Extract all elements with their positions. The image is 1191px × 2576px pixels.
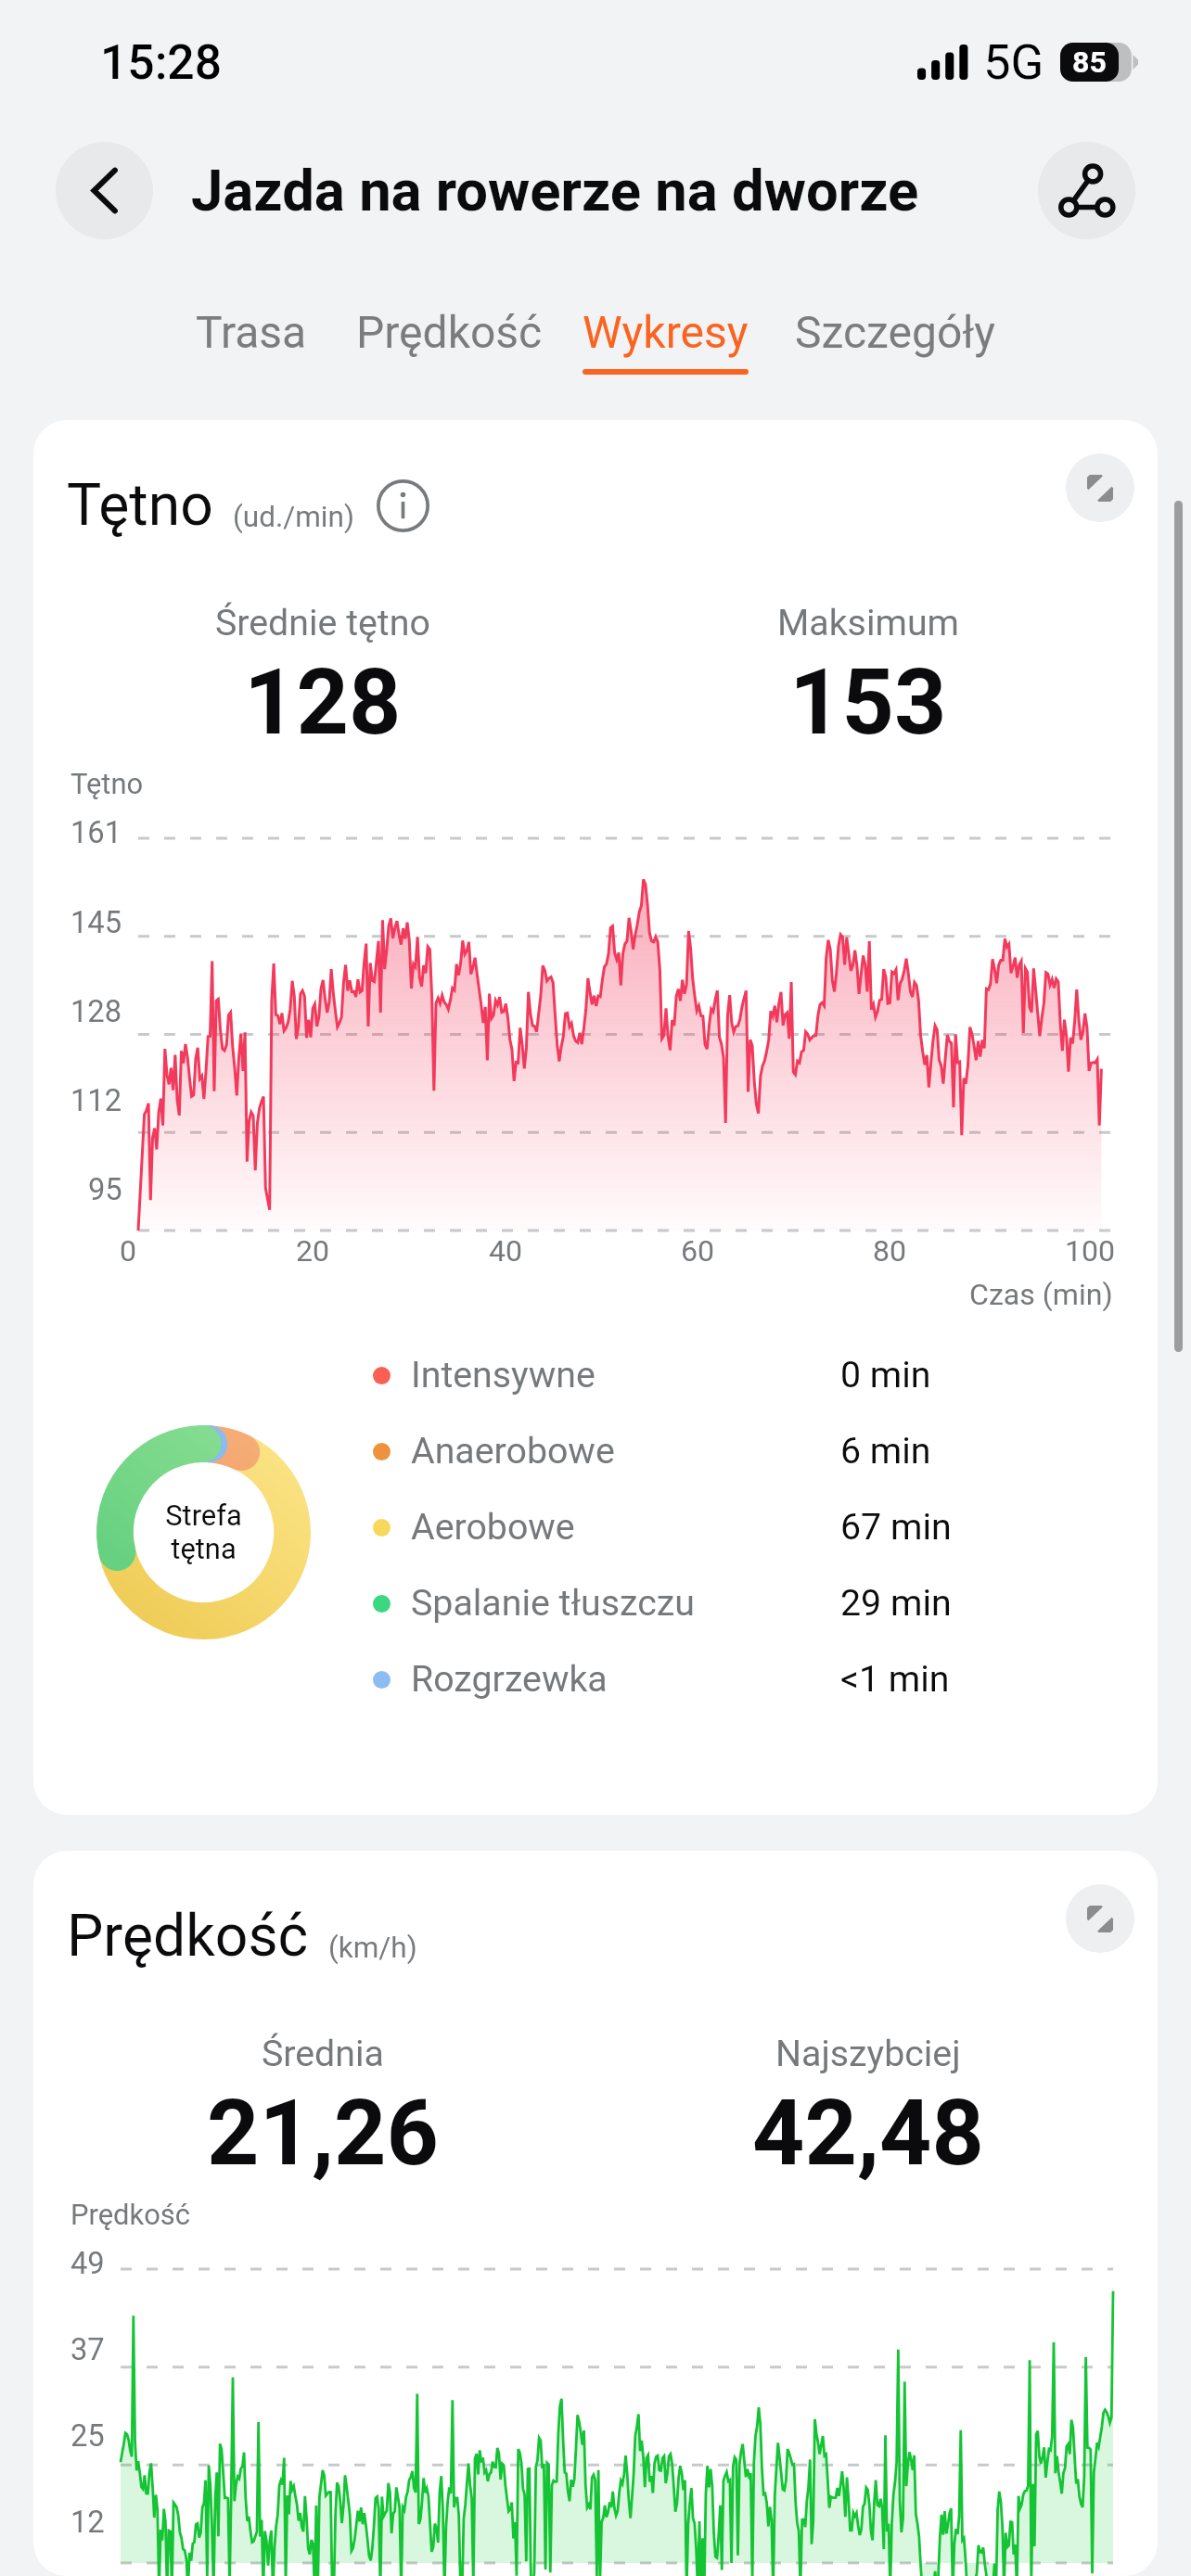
staticText: 40: [489, 1233, 523, 1269]
button[interactable]: Trasa: [196, 306, 307, 375]
staticText: Prędkość: [67, 1902, 309, 1970]
staticText: 112: [70, 1083, 122, 1118]
staticText: Jazda na rowerze na dworze: [191, 158, 919, 224]
staticText: 49: [70, 2246, 105, 2281]
staticText: Tętno: [70, 767, 144, 800]
staticText: 67 min: [840, 1506, 952, 1549]
staticText: 29 min: [840, 1582, 952, 1625]
staticText: 128: [244, 649, 402, 756]
staticText: 0 min: [840, 1354, 931, 1396]
staticText: 20: [296, 1233, 330, 1269]
button[interactable]: Powiększ wykres: [1066, 453, 1134, 522]
button[interactable]: Wstecz: [56, 142, 153, 239]
staticText: 21,26: [207, 2080, 439, 2187]
staticText: 153: [789, 649, 947, 756]
staticText: Najszybciej: [775, 2033, 961, 2075]
staticText: 5G: [983, 33, 1044, 91]
staticText: <1 min: [840, 1658, 950, 1701]
staticText: Anaerobowe: [411, 1430, 615, 1473]
staticText: 37: [70, 2332, 105, 2367]
staticText: Prędkość: [70, 2198, 190, 2231]
button[interactable]: Szczegóły: [795, 306, 995, 375]
staticText: Średnia: [262, 2033, 384, 2075]
staticText: 0: [120, 1233, 137, 1269]
staticText: Średnie tętno: [215, 602, 430, 644]
staticText: 12: [70, 2505, 105, 2540]
staticText: Szczegóły: [795, 306, 995, 358]
staticText: Tętno: [67, 471, 213, 539]
staticText: Intensywne: [411, 1354, 595, 1396]
staticText: Spalanie tłuszczu: [411, 1582, 695, 1625]
staticText: 95: [88, 1172, 122, 1207]
staticText: Wykresy: [583, 306, 749, 358]
staticText: (km/h): [328, 1931, 417, 1965]
staticText: 15:28: [100, 34, 222, 90]
staticText: 128: [70, 994, 122, 1029]
staticText: 25: [70, 2418, 105, 2454]
staticText: 145: [70, 905, 122, 940]
staticText: (ud./min): [233, 500, 354, 534]
button[interactable]: Prędkość: [356, 306, 543, 375]
staticText: Trasa: [196, 306, 307, 358]
button[interactable]: Wykresy: [583, 306, 749, 375]
staticText: 80: [873, 1233, 907, 1269]
staticText: Prędkość: [356, 306, 543, 358]
staticText: 42,48: [752, 2080, 984, 2187]
staticText: Maksimum: [777, 602, 960, 644]
staticText: 6 min: [840, 1430, 931, 1473]
staticText: Strefa tętna: [165, 1498, 242, 1565]
button[interactable]: Udostępnij: [1038, 142, 1135, 239]
staticText: Aerobowe: [411, 1506, 575, 1549]
staticText: Rozgrzewka: [411, 1658, 608, 1701]
staticText: 85: [1072, 45, 1107, 80]
staticText: 100: [1065, 1233, 1116, 1269]
button[interactable]: Powiększ wykres: [1066, 1884, 1134, 1953]
staticText: 161: [70, 815, 122, 850]
staticText: 60: [681, 1233, 715, 1269]
staticText: Czas (min): [969, 1277, 1113, 1312]
